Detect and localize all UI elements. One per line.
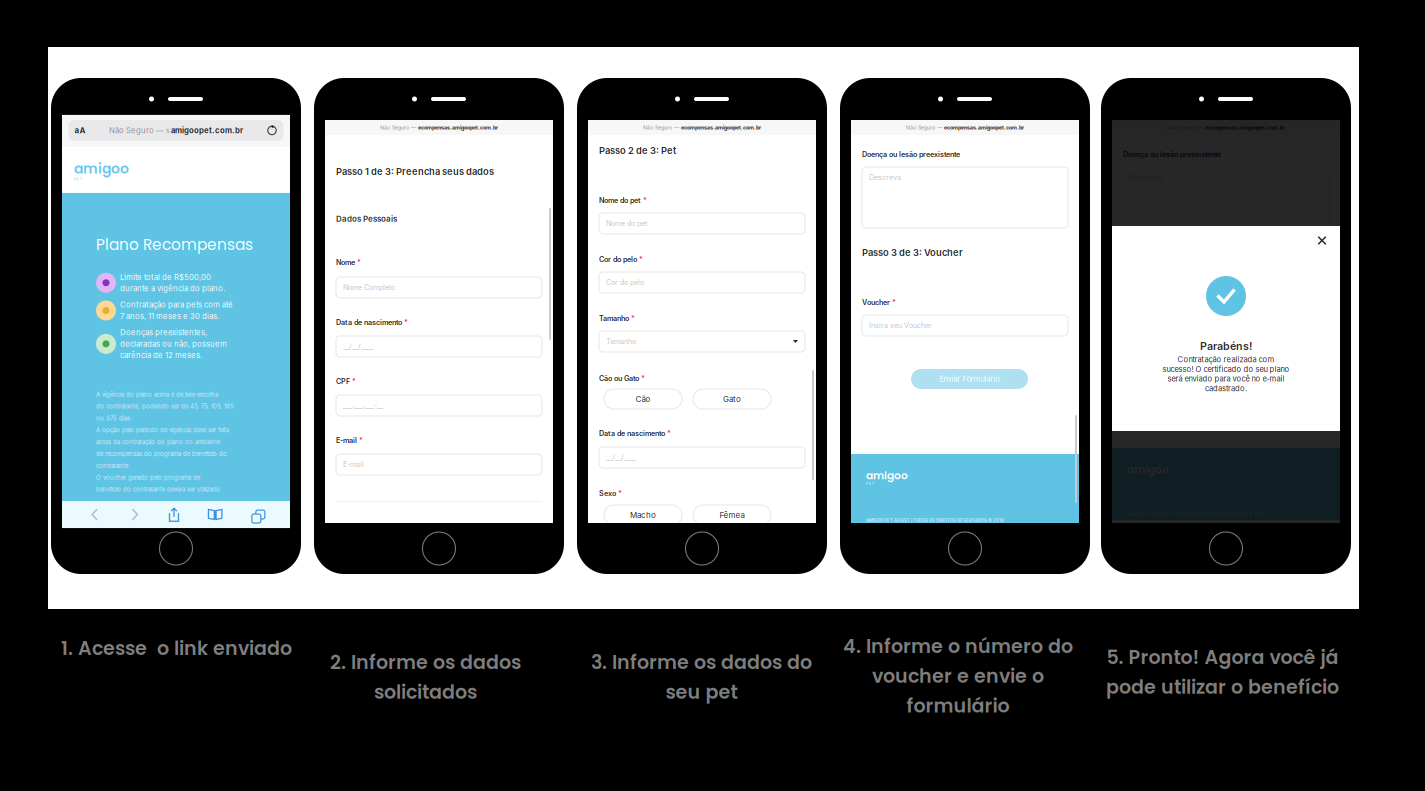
staticText: A vigência do plano acima é de livre esc…: [96, 391, 218, 398]
staticText: *: [631, 314, 635, 323]
staticText: Passo 1 de 3: Preencha seus dados: [336, 166, 494, 177]
staticText: pode utilizar o benefício: [1106, 674, 1339, 700]
staticText: Doenças preexistentes,: [120, 328, 207, 337]
staticText: Nome: [336, 258, 355, 267]
staticText: *: [352, 377, 356, 386]
staticText: cadastrado.: [1205, 384, 1247, 393]
staticText: O voucher gerado pelo programa de: [96, 474, 200, 481]
staticText: Enviar Formulário: [939, 374, 999, 383]
staticText: Fêmea: [719, 510, 744, 520]
staticText: Nome Completo: [343, 283, 395, 292]
staticText: Nome do pet: [606, 219, 647, 228]
staticText: Não Seguro —: [109, 126, 166, 135]
staticText: ecompensas.amigoopet.com.br: [418, 124, 498, 131]
button[interactable]: Enviar Formulário: [911, 369, 1028, 389]
staticText: amigoo: [1127, 462, 1169, 477]
staticText: amigoo: [866, 468, 908, 483]
button[interactable]: Gato: [693, 389, 771, 409]
staticText: amigoopet.com.br: [171, 126, 243, 135]
staticText: Dados Pessoais: [336, 214, 397, 224]
button[interactable]: Bookmarks: [208, 508, 223, 521]
staticText: antes da contratação do plano no ambient…: [96, 438, 220, 446]
button[interactable]: Fêmea: [693, 505, 771, 525]
staticText: sucesso! O certificado do seu plano: [1162, 365, 1289, 374]
staticText: contratante.: [96, 462, 130, 469]
staticText: ecompensas.amigoopet.com.br: [1205, 124, 1285, 131]
staticText: Cão ou Gato: [599, 374, 639, 383]
staticText: P E T: [74, 177, 82, 181]
staticText: Cão: [635, 394, 650, 404]
button[interactable]: Close: [1317, 236, 1326, 245]
staticText: solicitados: [374, 679, 477, 705]
staticText: Gato: [723, 394, 741, 404]
staticText: formulário: [906, 692, 1009, 719]
staticText: Insira seu Voucher: [869, 321, 932, 330]
staticText: Contratação realizada com: [1177, 355, 1274, 364]
staticText: Cor do pelo: [606, 278, 644, 287]
staticText: Não Seguro —: [906, 124, 942, 131]
staticText: Passo 3 de 3: Voucher: [862, 247, 963, 258]
staticText: 3. Informe os dados do: [591, 649, 812, 676]
button[interactable]: Back: [89, 508, 101, 522]
staticText: *: [643, 196, 647, 205]
staticText: ecompensas.amigoopet.com.br: [944, 124, 1024, 131]
staticText: AMIGOO PET ASSIST | TODOS OS DIREITOS RE…: [866, 518, 1004, 523]
staticText: 7 anos, 11 meses e 30 dias.: [120, 311, 219, 321]
staticText: Nome do pet: [599, 196, 641, 205]
staticText: E-mail: [336, 436, 357, 445]
button[interactable]: Forward: [128, 508, 140, 522]
staticText: de recompensas do programa de benefício …: [96, 450, 227, 457]
staticText: declaradas ou não, possuem: [120, 339, 227, 349]
button[interactable]: Share: [167, 507, 180, 522]
staticText: *: [667, 429, 671, 438]
staticText: Não Seguro —: [1167, 124, 1203, 131]
staticText: seu pet: [665, 679, 737, 705]
button[interactable]: Cão: [604, 389, 682, 409]
staticText: durante a vigência do plano.: [120, 284, 225, 293]
staticText: P E T: [866, 482, 874, 486]
staticText: voucher e envie o: [872, 663, 1044, 689]
staticText: Contratação para pets com até: [120, 300, 233, 309]
staticText: ___.___.___-__: [343, 401, 383, 410]
staticText: Descreva: [869, 173, 901, 182]
staticText: Tamanho: [606, 337, 636, 346]
staticText: *: [892, 298, 896, 307]
staticText: Macho: [630, 510, 656, 520]
staticText: Doença ou lesão preexistente: [1123, 150, 1221, 159]
staticText: Plano Recompensas: [96, 234, 253, 255]
staticText: será enviado para você no e-mail: [1167, 374, 1284, 383]
staticText: Limite total de R$500,00: [120, 272, 211, 282]
staticText: benefício do contratante deverá ser util…: [96, 486, 220, 493]
staticText: AMIGOO PET ASSIST | TODOS OS DIREITOS RE…: [1127, 512, 1265, 517]
staticText: Data de nascimento: [599, 429, 665, 438]
staticText: CPF: [336, 377, 350, 386]
staticText: amigoo: [74, 159, 129, 178]
staticText: ou 375 dias.: [96, 415, 132, 422]
staticText: 5. Pronto! Agora você já: [1106, 644, 1338, 671]
staticText: 4. Informe o número do: [843, 633, 1073, 660]
staticText: do contratante, podendo ser de 45, 75, 1…: [96, 403, 234, 410]
staticText: Não Seguro —: [380, 124, 416, 131]
staticText: P E T: [1127, 476, 1135, 480]
staticText: Cor do pelo: [599, 255, 637, 264]
staticText: 2. Informe os dados: [330, 649, 521, 676]
staticText: *: [618, 489, 622, 498]
staticText: __/__/____: [343, 342, 373, 351]
staticText: Passo 2 de 3: Pet: [599, 145, 676, 156]
staticText: aA: [74, 126, 85, 135]
staticText: *: [404, 318, 408, 327]
staticText: Parabéns!: [1200, 339, 1252, 352]
staticText: Tamanho: [599, 314, 629, 323]
button[interactable]: Macho: [604, 505, 682, 525]
staticText: Voucher: [862, 298, 890, 307]
staticText: *: [357, 258, 361, 267]
staticText: 1. Acesse o link enviado: [61, 635, 292, 662]
staticText: Não Seguro —: [643, 124, 679, 131]
button[interactable]: Tabs: [250, 508, 263, 521]
staticText: s.: [166, 127, 171, 134]
staticText: *: [359, 436, 363, 445]
staticText: Sexo: [599, 489, 616, 498]
staticText: Doença ou lesão preexistente: [862, 150, 960, 159]
staticText: carência de 12 meses.: [120, 351, 202, 360]
